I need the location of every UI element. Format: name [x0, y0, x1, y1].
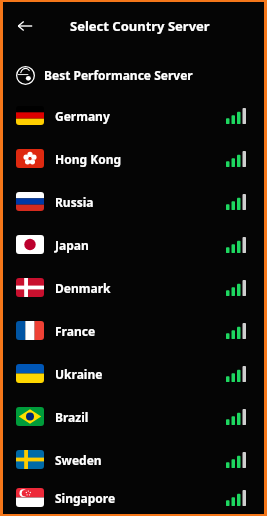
staticText: Sweden [55, 452, 102, 468]
button[interactable]: Germany [3, 94, 264, 137]
button[interactable]: France [3, 309, 264, 352]
staticText: Russia [55, 194, 94, 210]
button[interactable]: Denmark [3, 266, 264, 309]
button[interactable]: Sweden [3, 438, 264, 481]
button[interactable]: Brazil [3, 395, 264, 438]
staticText: Japan [55, 237, 89, 253]
staticText: Hong Kong [55, 151, 122, 167]
button[interactable]: Ukraine [3, 352, 264, 395]
button[interactable]: Hong Kong [3, 137, 264, 180]
staticText: France [55, 323, 96, 339]
button[interactable]: Singapore [3, 481, 264, 514]
button[interactable]: Best Performance Server [3, 56, 264, 94]
staticText: Germany [55, 108, 110, 124]
staticText: Best Performance Server [44, 67, 193, 83]
staticText: Singapore [55, 490, 116, 506]
button[interactable]: Back [11, 12, 39, 40]
staticText: Brazil [55, 409, 89, 425]
button[interactable]: Russia [3, 180, 264, 223]
staticText: Ukraine [55, 366, 103, 382]
staticText: Denmark [55, 280, 111, 296]
staticText: Select Country Server [70, 17, 210, 35]
button[interactable]: Japan [3, 223, 264, 266]
